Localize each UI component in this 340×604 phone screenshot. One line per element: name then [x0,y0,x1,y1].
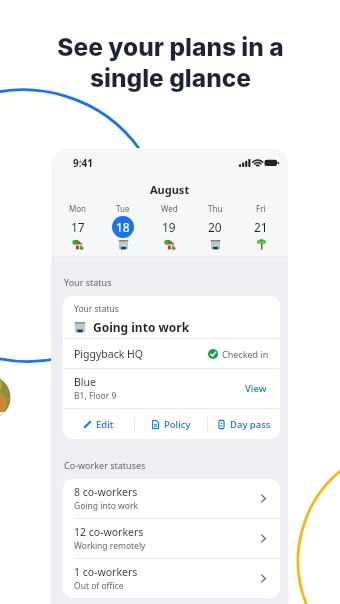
staticText: Your status [64,276,112,288]
staticText: Co-worker statuses [64,459,146,471]
staticText: View [245,382,267,395]
button[interactable]: Thu [192,203,238,250]
staticText: Checked in [222,348,269,360]
button[interactable]: 8 co-workers [63,479,280,519]
staticText: Piggyback HQ [74,347,144,361]
staticText: Fri [256,203,266,214]
staticText: B1, Floor 9 [74,390,117,402]
staticText: See your plans in a single glance [57,32,284,93]
button[interactable]: 12 co-workers [63,519,280,559]
staticText: 21 [254,219,268,235]
button[interactable]: Day pass [208,409,280,439]
button[interactable]: View [243,378,269,399]
button[interactable]: Mon [55,203,100,250]
staticText: Policy [164,418,191,431]
staticText: 20 [208,219,222,235]
staticText: 18 [116,219,130,235]
staticText: Going into work [93,319,190,335]
staticText: 19 [162,219,176,235]
button[interactable]: 1 co-workers [63,559,280,598]
staticText: Wed [161,203,178,214]
button[interactable]: Wed [146,203,192,250]
button[interactable]: Edit [63,409,134,439]
staticText: Going into work [74,500,138,512]
staticText: Day pass [230,418,271,431]
button[interactable]: Tue [100,203,146,250]
staticText: 8 co-workers [74,485,138,499]
staticText: Mon [69,203,87,214]
staticText: Out of office [74,580,124,592]
staticText: Blue [74,375,96,389]
staticText: 9:41 [73,156,93,170]
staticText: Thu [208,203,223,214]
other: Open [258,493,269,504]
staticText: Working remotely [74,540,146,552]
other: Open [258,573,269,584]
staticText: 12 co-workers [74,525,144,539]
other: Open [258,533,269,544]
button[interactable]: Fri [238,203,284,250]
staticText: Edit [96,418,114,431]
staticText: Your status [74,303,119,315]
staticText: August [150,182,190,197]
staticText: 17 [71,219,85,235]
staticText: Tue [116,203,130,214]
staticText: 1 co-workers [74,565,138,579]
button[interactable]: Policy [135,409,207,439]
